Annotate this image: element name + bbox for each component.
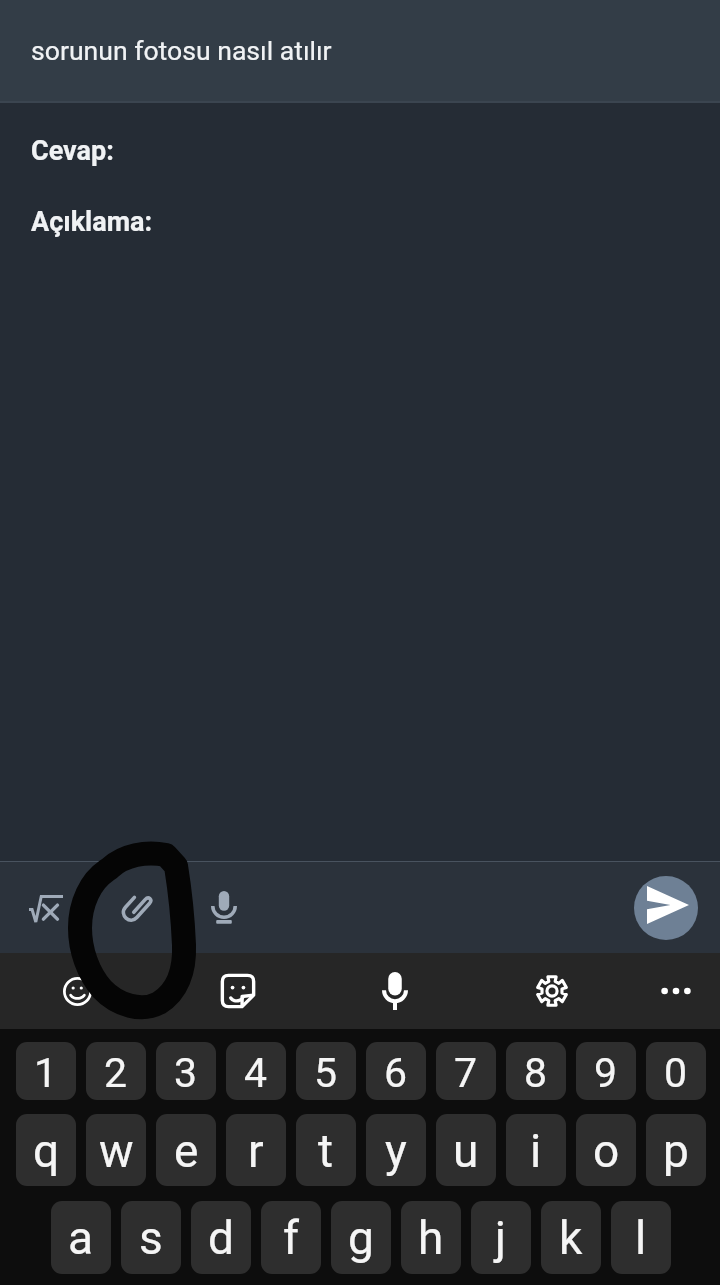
staticText: r [248,1124,264,1178]
staticText: p [663,1124,689,1178]
staticText: 1 [34,1049,58,1097]
staticText: Açıklama: [31,206,153,238]
staticText: h [418,1211,444,1265]
button[interactable]: o [576,1114,636,1186]
button[interactable]: j [471,1201,531,1274]
button[interactable]: i [506,1114,566,1186]
button[interactable]: 6 [366,1042,426,1100]
button[interactable]: 2 [86,1042,146,1100]
button[interactable]: More options [642,957,710,1025]
button[interactable]: a [51,1201,111,1274]
staticText: g [348,1211,374,1265]
button[interactable]: 1 [16,1042,76,1100]
button[interactable]: Math keyboard [6,869,86,949]
button[interactable]: Send [634,876,698,940]
button[interactable]: 3 [156,1042,216,1100]
staticText: 4 [244,1049,268,1097]
staticText: Cevap: [31,135,114,167]
staticText: j [495,1211,507,1265]
staticText: f [283,1211,299,1265]
staticText: e [174,1124,199,1178]
staticText: 8 [524,1049,548,1097]
staticText: 6 [384,1049,408,1097]
button[interactable]: Attach file [96,867,176,947]
staticText: 7 [454,1049,478,1097]
staticText: l [635,1211,647,1265]
staticText: t [318,1124,334,1178]
button[interactable]: 7 [436,1042,496,1100]
button[interactable]: r [226,1114,286,1186]
button[interactable]: q [16,1114,76,1186]
staticText: 2 [104,1049,128,1097]
button[interactable]: Emoji [43,957,111,1025]
button[interactable]: k [541,1201,601,1274]
button[interactable]: 4 [226,1042,286,1100]
staticText: 9 [594,1049,618,1097]
staticText: a [68,1211,94,1265]
button[interactable]: u [436,1114,496,1186]
button[interactable]: Voice input [184,867,264,947]
staticText: w [99,1124,134,1178]
button[interactable]: 0 [646,1042,706,1100]
button[interactable]: y [366,1114,426,1186]
button[interactable]: 5 [296,1042,356,1100]
button[interactable]: f [261,1201,321,1274]
staticText: 5 [314,1049,338,1097]
button[interactable]: p [646,1114,706,1186]
button[interactable]: d [191,1201,251,1274]
button[interactable]: Voice typing [361,957,429,1025]
staticText: d [208,1211,234,1265]
button[interactable]: w [86,1114,146,1186]
button[interactable]: 8 [506,1042,566,1100]
staticText: 0 [664,1049,688,1097]
button[interactable]: Settings [518,957,586,1025]
button[interactable]: Stickers [204,957,272,1025]
button[interactable]: s [121,1201,181,1274]
button[interactable]: 9 [576,1042,636,1100]
staticText: 3 [174,1049,198,1097]
button[interactable]: g [331,1201,391,1274]
button[interactable]: e [156,1114,216,1186]
staticText: i [530,1124,542,1178]
button[interactable]: h [401,1201,461,1274]
staticText: sorunun fotosu nasıl atılır [31,35,332,66]
staticText: k [559,1211,583,1265]
button[interactable]: sorunun fotosu nasıl atılır [0,0,720,103]
staticText: u [453,1124,479,1178]
staticText: s [139,1211,163,1265]
staticText: o [593,1124,620,1178]
staticText: y [385,1124,407,1178]
button[interactable]: l [611,1201,671,1274]
button[interactable]: t [296,1114,356,1186]
staticText: q [33,1124,60,1178]
